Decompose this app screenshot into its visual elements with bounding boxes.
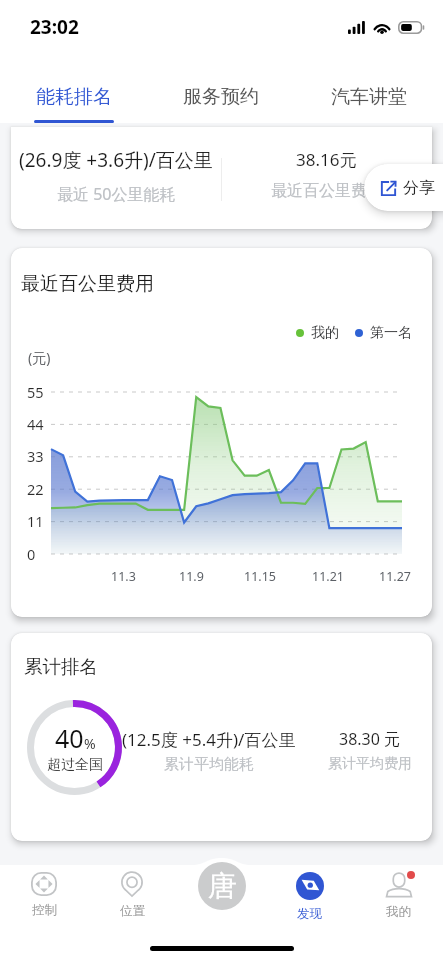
staticText: 能耗排名 <box>36 85 112 109</box>
staticText: 控制 <box>32 902 57 918</box>
button[interactable]: 控制 <box>0 858 88 918</box>
staticText: 44 <box>27 414 44 434</box>
staticText: 我的 <box>386 904 411 920</box>
button[interactable]: 首页 <box>198 862 246 910</box>
staticText: 38.30 元 <box>339 728 401 750</box>
staticText: 分享 <box>403 178 435 198</box>
staticText: 11.27 <box>379 568 411 585</box>
staticText: (12.5度 +5.4升)/百公里 <box>122 728 296 751</box>
staticText: 我的 <box>311 324 339 342</box>
button[interactable]: 服务预约 <box>147 60 295 123</box>
staticText: 40 <box>55 721 84 755</box>
button[interactable]: 汽车讲堂 <box>295 60 443 123</box>
staticText: 55 <box>27 382 44 402</box>
staticText: % <box>84 734 96 753</box>
staticText: 11.15 <box>244 568 276 585</box>
staticText: 最近百公里费用 <box>21 272 154 296</box>
staticText: 发现 <box>297 906 322 922</box>
staticText: 22 <box>27 479 44 499</box>
staticText: 23:02 <box>30 14 79 40</box>
staticText: 服务预约 <box>183 85 259 109</box>
staticText: 33 <box>27 446 44 466</box>
staticText: 11 <box>27 511 44 531</box>
button[interactable]: 发现 <box>265 858 354 922</box>
button[interactable]: 我的 <box>354 858 443 920</box>
staticText: 位置 <box>120 903 145 919</box>
staticText: 第一名 <box>370 324 412 342</box>
button[interactable]: 分享 <box>364 164 443 211</box>
staticText: 汽车讲堂 <box>331 85 407 109</box>
staticText: 0 <box>27 544 36 564</box>
staticText: 最近百公里费用 <box>271 181 383 201</box>
staticText: 累计平均费用 <box>328 755 412 773</box>
staticText: (26.9度 +3.6升)/百公里 <box>19 147 213 173</box>
staticText: 11.21 <box>312 568 344 585</box>
button[interactable]: 能耗排名 <box>0 60 147 123</box>
staticText: 11.3 <box>111 568 136 585</box>
button[interactable]: 位置 <box>88 858 176 919</box>
staticText: 11.9 <box>179 568 204 585</box>
staticText: 唐 <box>208 868 237 905</box>
staticText: 38.16元 <box>296 148 357 171</box>
staticText: 累计平均能耗 <box>164 755 254 774</box>
staticText: 超过全国 <box>47 756 103 774</box>
staticText: (元) <box>28 348 51 367</box>
staticText: 累计排名 <box>24 655 98 678</box>
staticText: 最近 50公里能耗 <box>57 183 176 205</box>
